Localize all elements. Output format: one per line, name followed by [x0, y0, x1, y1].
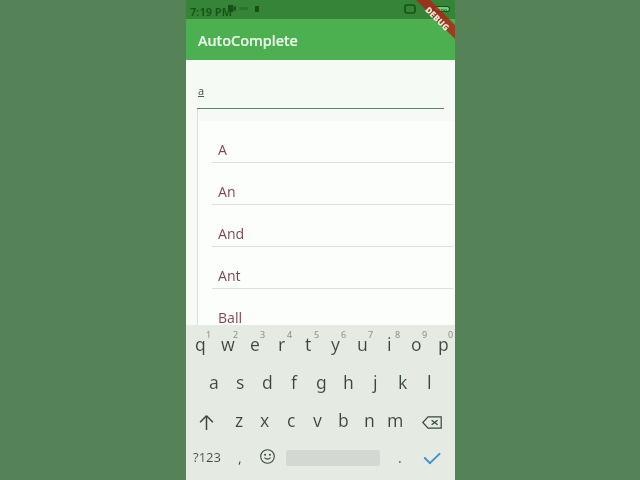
- button[interactable]: m: [382, 406, 408, 438]
- staticText: h: [343, 370, 354, 394]
- button[interactable]: A: [198, 121, 453, 163]
- button[interactable]: An: [198, 163, 453, 205]
- button[interactable]: e: [241, 327, 268, 359]
- staticText: ,: [238, 448, 242, 467]
- staticText: d: [262, 370, 273, 394]
- staticText: p: [438, 332, 449, 356]
- staticText: Ball: [218, 308, 243, 327]
- staticText: l: [427, 370, 432, 394]
- staticText: A: [218, 140, 227, 159]
- button[interactable]: q: [187, 327, 214, 359]
- staticText: r: [278, 332, 286, 356]
- staticText: AutoComplete: [198, 30, 298, 50]
- staticText: q: [195, 332, 206, 356]
- staticText: 1: [206, 328, 212, 340]
- staticText: g: [316, 370, 327, 394]
- button[interactable]: z: [226, 406, 252, 438]
- staticText: z: [235, 408, 244, 432]
- staticText: DEBUG: [424, 4, 452, 32]
- staticText: m: [387, 408, 404, 432]
- staticText: u: [357, 332, 368, 356]
- staticText: j: [373, 370, 378, 394]
- button[interactable]: .: [389, 440, 411, 472]
- staticText: An: [218, 182, 236, 201]
- button[interactable]: i: [376, 327, 403, 359]
- button[interactable]: And: [198, 205, 453, 247]
- staticText: 3: [260, 328, 266, 340]
- button[interactable]: Ball: [198, 289, 453, 331]
- staticText: 9: [422, 328, 428, 340]
- staticText: t: [305, 332, 312, 356]
- button[interactable]: ?123: [189, 440, 225, 472]
- staticText: f: [291, 370, 298, 394]
- staticText: o: [411, 332, 422, 356]
- button[interactable]: k: [389, 365, 416, 397]
- staticText: b: [338, 408, 349, 432]
- staticText: y: [331, 332, 340, 356]
- staticText: c: [287, 408, 296, 432]
- staticText: 0: [448, 328, 454, 340]
- staticText: a: [209, 370, 219, 394]
- button[interactable]: p: [430, 327, 455, 359]
- button[interactable]: l: [416, 365, 443, 397]
- staticText: 7:19 PM: [190, 4, 233, 19]
- staticText: x: [260, 408, 270, 432]
- button[interactable]: Backspace: [408, 406, 455, 438]
- staticText: 7: [368, 328, 374, 340]
- button[interactable]: o: [403, 327, 430, 359]
- button[interactable]: h: [335, 365, 362, 397]
- staticText: Ant: [218, 266, 241, 285]
- button[interactable]: Emoji: [255, 440, 279, 472]
- button[interactable]: x: [252, 406, 278, 438]
- button[interactable]: Shift: [186, 406, 226, 438]
- button[interactable]: n: [356, 406, 382, 438]
- staticText: s: [236, 370, 245, 394]
- button[interactable]: f: [281, 365, 308, 397]
- staticText: .: [398, 448, 402, 467]
- button[interactable]: ,: [229, 440, 251, 472]
- button[interactable]: b: [330, 406, 356, 438]
- staticText: And: [218, 224, 245, 243]
- button[interactable]: y: [322, 327, 349, 359]
- staticText: 4: [287, 328, 293, 340]
- staticText: 5: [314, 328, 320, 340]
- button[interactable]: w: [214, 327, 241, 359]
- staticText: n: [364, 408, 375, 432]
- button[interactable]: Enter: [414, 442, 450, 474]
- staticText: 2: [233, 328, 239, 340]
- staticText: w: [221, 332, 235, 356]
- button[interactable]: g: [308, 365, 335, 397]
- staticText: e: [250, 332, 260, 356]
- staticText: 8: [395, 328, 401, 340]
- staticText: k: [398, 370, 408, 394]
- button[interactable]: r: [268, 327, 295, 359]
- button[interactable]: s: [227, 365, 254, 397]
- button[interactable]: v: [304, 406, 330, 438]
- button[interactable]: Ant: [198, 247, 453, 289]
- button[interactable]: a: [200, 365, 227, 397]
- button[interactable]: d: [254, 365, 281, 397]
- staticText: v: [313, 408, 322, 432]
- button[interactable]: t: [295, 327, 322, 359]
- staticText: 100: [437, 7, 448, 11]
- button[interactable]: c: [278, 406, 304, 438]
- staticText: ?123: [193, 448, 221, 466]
- button[interactable]: u: [349, 327, 376, 359]
- staticText: a: [198, 83, 205, 98]
- staticText: 6: [341, 328, 347, 340]
- staticText: i: [387, 332, 392, 356]
- button[interactable]: j: [362, 365, 389, 397]
